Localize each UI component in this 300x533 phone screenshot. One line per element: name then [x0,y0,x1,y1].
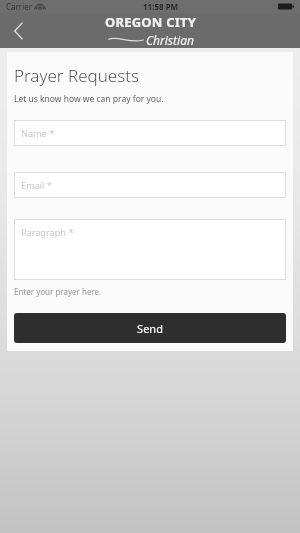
staticText: OREGON CITY [105,13,196,31]
staticText: Prayer Requests [14,64,139,87]
staticText: Paragraph * [21,226,74,239]
button[interactable]: Back [0,13,36,48]
staticText: Christian [146,32,194,48]
staticText: Carrier [6,1,33,12]
staticText: Let us know how we can pray for you. [14,93,164,105]
staticText: Enter your prayer here. [14,286,102,297]
button[interactable]: Name * [14,120,286,146]
staticText: 11:58 PM [143,1,179,12]
staticText: Name * [21,127,55,140]
button[interactable]: Send [14,313,286,343]
staticText: Send [137,321,163,336]
staticText: Email * [21,179,52,192]
button[interactable]: Email * [14,172,286,198]
button[interactable]: Paragraph * [14,219,286,280]
